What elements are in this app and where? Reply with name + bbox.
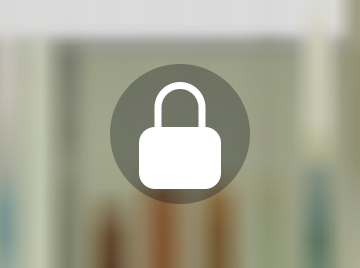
button[interactable]: Content locked — [110, 64, 250, 204]
